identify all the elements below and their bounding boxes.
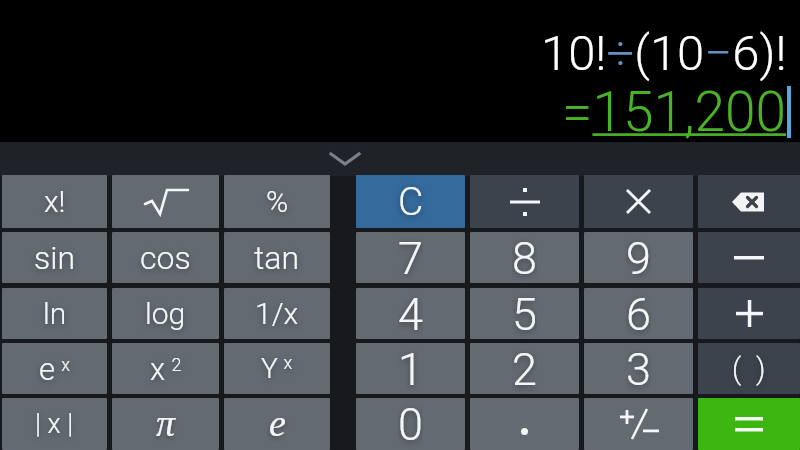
staticText: | x | (35, 408, 74, 440)
button[interactable] (470, 398, 579, 450)
staticText: ln (43, 296, 67, 331)
button[interactable]: 0 (356, 398, 465, 450)
staticText: Y x (261, 352, 293, 385)
staticText: ( (732, 352, 742, 386)
staticText: 5 (512, 288, 537, 339)
button[interactable]: tan (224, 232, 330, 283)
button[interactable] (584, 398, 693, 450)
button[interactable] (698, 288, 800, 339)
staticText: e (269, 402, 286, 444)
staticText: 9 (626, 232, 651, 283)
button[interactable]: 1/x (224, 288, 330, 339)
staticText: tan (254, 239, 300, 277)
button[interactable]: 9 (584, 232, 693, 283)
button[interactable] (698, 232, 800, 283)
button[interactable] (0, 142, 800, 176)
button[interactable] (584, 175, 693, 228)
staticText: ) (756, 352, 766, 386)
staticText: 8 (512, 232, 537, 283)
staticText: 6 (626, 288, 651, 339)
staticText: x! (44, 184, 66, 219)
button[interactable]: 8 (470, 232, 579, 283)
staticText: 4 (398, 288, 423, 339)
button[interactable]: 1 (356, 343, 465, 394)
staticText: 2 (512, 343, 537, 394)
staticText: 7 (398, 232, 423, 283)
staticText: x 2 (150, 351, 182, 387)
button[interactable]: x! (2, 175, 107, 228)
staticText: log (145, 296, 186, 331)
staticText: sin (34, 239, 75, 277)
button[interactable]: log (112, 288, 219, 339)
staticText: e x (39, 351, 71, 387)
button[interactable]: π (112, 398, 219, 450)
staticText: 1 (398, 343, 423, 394)
button[interactable]: 3 (584, 343, 693, 394)
button[interactable]: 2 (470, 343, 579, 394)
button[interactable]: cos (112, 232, 219, 283)
button[interactable]: sin (2, 232, 107, 283)
button[interactable]: 7 (356, 232, 465, 283)
button[interactable]: 5 (470, 288, 579, 339)
staticText: =151,200 (562, 80, 787, 144)
button[interactable]: 4 (356, 288, 465, 339)
button[interactable]: | x | (2, 398, 107, 450)
staticText: 0 (398, 398, 423, 450)
button[interactable]: C (356, 175, 465, 228)
button[interactable] (698, 398, 800, 450)
staticText: cos (140, 239, 191, 277)
staticText: C (398, 179, 424, 225)
staticText: % (266, 184, 289, 219)
button[interactable] (698, 175, 800, 228)
button[interactable]: e x (2, 343, 107, 394)
staticText: π (156, 402, 176, 444)
button[interactable] (112, 175, 219, 228)
button[interactable] (470, 175, 579, 228)
button[interactable]: Y x (224, 343, 330, 394)
button[interactable]: 6 (584, 288, 693, 339)
button[interactable]: % (224, 175, 330, 228)
staticText: 3 (626, 343, 651, 394)
button[interactable]: ( (698, 343, 800, 394)
button[interactable]: x 2 (112, 343, 219, 394)
button[interactable]: e (224, 398, 330, 450)
button[interactable]: ln (2, 288, 107, 339)
staticText: 10!÷(10−6)! (541, 25, 787, 82)
staticText: 1/x (255, 296, 299, 331)
